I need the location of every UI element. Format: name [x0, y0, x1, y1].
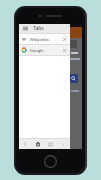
button[interactable]: Back [19, 139, 31, 149]
staticText: Google [30, 48, 61, 53]
staticText: Wikipedia [30, 37, 61, 42]
button[interactable]: Tabs [44, 139, 57, 149]
button[interactable]: Google [19, 45, 70, 55]
button[interactable]: Menu [22, 25, 29, 32]
button[interactable]: More [57, 139, 70, 149]
button[interactable]: Close Wikipedia tab [61, 36, 67, 42]
button[interactable]: Search [69, 74, 78, 83]
button[interactable]: Wikipedia [19, 34, 70, 44]
button[interactable]: Close Google tab [61, 47, 67, 53]
staticText: Tabs [33, 25, 44, 32]
button[interactable]: Home [31, 139, 44, 149]
